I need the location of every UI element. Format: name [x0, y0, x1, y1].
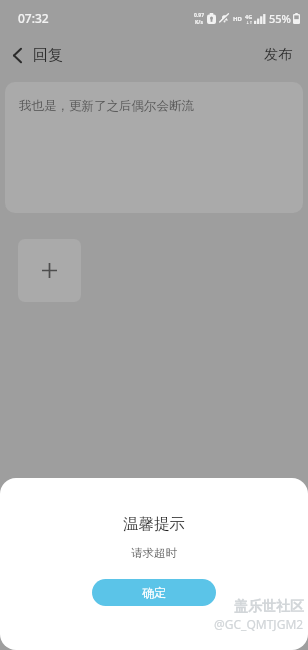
- staticText: @GC_QMTJGM2: [214, 616, 304, 632]
- staticText: 07:32: [18, 10, 49, 26]
- staticText: 回复: [33, 46, 63, 65]
- staticText: HD: [233, 15, 242, 23]
- staticText: 0.97: [194, 12, 204, 19]
- button[interactable]: Add photo: [18, 239, 81, 302]
- staticText: 请求超时: [131, 546, 177, 560]
- staticText: ↓↑: [246, 20, 253, 25]
- staticText: K/s: [195, 19, 203, 26]
- staticText: 55%: [269, 11, 291, 26]
- staticText: 我也是，更新了之后偶尔会断流: [19, 98, 194, 114]
- button[interactable]: 确定: [92, 579, 216, 606]
- button[interactable]: Back: [0, 40, 73, 71]
- other: Back: [12, 47, 23, 64]
- staticText: 发布: [264, 46, 292, 64]
- staticText: 确定: [142, 585, 166, 600]
- staticText: 4G: [245, 13, 253, 20]
- staticText: 盖乐世社区: [234, 598, 304, 616]
- button[interactable]: 我也是，更新了之后偶尔会断流: [5, 82, 303, 213]
- staticText: 温馨提示: [123, 514, 185, 534]
- button[interactable]: 发布: [248, 40, 308, 70]
